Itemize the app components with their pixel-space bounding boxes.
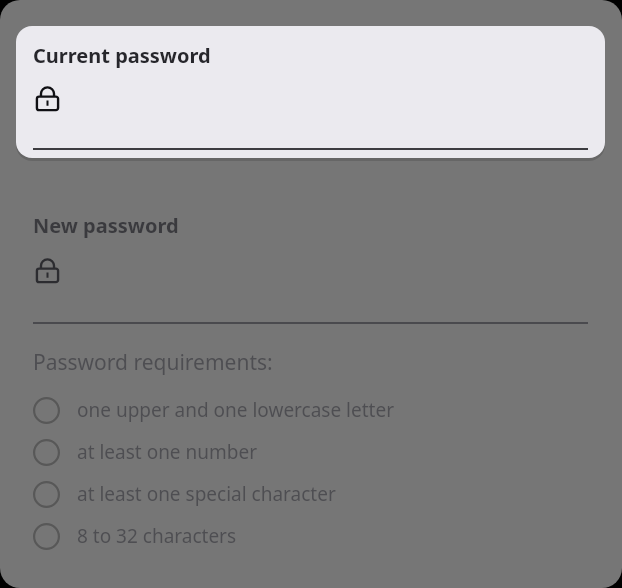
staticText: Current password	[33, 42, 211, 69]
staticText: one upper and one lowercase letter	[77, 397, 394, 423]
button[interactable]: 8 to 32 characters	[0, 515, 622, 557]
staticText: 8 to 32 characters	[77, 523, 237, 549]
button[interactable]: one upper and one lowercase letter	[0, 389, 622, 431]
staticText: at least one special character	[77, 481, 336, 507]
other: New password field	[33, 256, 62, 285]
other: Password field	[33, 84, 62, 113]
staticText: Password requirements:	[33, 348, 273, 377]
staticText: New password	[33, 212, 179, 239]
button[interactable]: Current password	[16, 26, 605, 158]
button[interactable]: at least one number	[0, 431, 622, 473]
button[interactable]: at least one special character	[0, 473, 622, 515]
staticText: at least one number	[77, 439, 258, 465]
